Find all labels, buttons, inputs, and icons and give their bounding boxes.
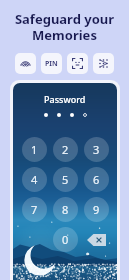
button[interactable]: 1 — [22, 137, 47, 162]
button[interactable]: 2 — [53, 137, 78, 162]
button[interactable]: Face unlock — [67, 53, 88, 74]
button[interactable]: 4 — [22, 167, 47, 192]
staticText: 4 — [31, 172, 38, 187]
staticText: Safeguard your Memories — [0, 10, 129, 44]
staticText: 7 — [31, 202, 38, 217]
staticText: 6 — [93, 172, 100, 187]
button[interactable]: 6 — [84, 167, 109, 192]
staticText: 8 — [62, 202, 69, 217]
staticText: Password — [44, 93, 86, 105]
staticText: 9 — [93, 202, 100, 217]
staticText: 0 — [62, 232, 69, 247]
button[interactable]: 7 — [22, 197, 47, 222]
button[interactable]: Backspace — [84, 227, 109, 252]
staticText: 3 — [93, 142, 100, 157]
button[interactable]: 5 — [53, 167, 78, 192]
button[interactable]: 0 — [53, 227, 78, 252]
staticText: 5 — [62, 172, 69, 187]
button[interactable]: 3 — [84, 137, 109, 162]
button[interactable]: PIN unlock — [41, 53, 62, 74]
button[interactable]: 8 — [53, 197, 78, 222]
button[interactable]: Fingerprint unlock — [15, 53, 36, 74]
staticText: 1 — [31, 142, 38, 157]
button[interactable]: 9 — [84, 197, 109, 222]
button[interactable]: Pattern unlock — [93, 53, 114, 74]
staticText: PIN — [45, 59, 58, 69]
staticText: 2 — [62, 142, 69, 157]
